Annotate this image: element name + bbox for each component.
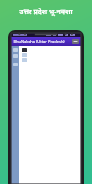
button[interactable] xyxy=(13,48,18,52)
staticText: BhuNaksha (Uttar Pradesh) xyxy=(13,39,65,44)
button[interactable] xyxy=(11,46,19,184)
button[interactable]: Menu xyxy=(72,39,79,44)
button[interactable]: Zoom in xyxy=(22,48,27,52)
button[interactable]: BhuNaksha (Uttar Pradesh) xyxy=(11,37,81,46)
button[interactable] xyxy=(13,63,18,66)
button[interactable] xyxy=(13,54,18,58)
staticText: उत्तर प्रदेश भू-नक्शा xyxy=(19,7,73,17)
